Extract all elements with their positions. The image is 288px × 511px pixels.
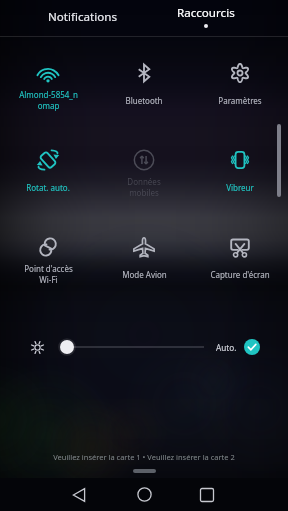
button[interactable]: Point d'accès Wi-Fi [0, 214, 96, 301]
button[interactable]: Données mobiles [96, 127, 192, 214]
staticText: Vibreur [226, 182, 254, 193]
button[interactable]: Paramètres [192, 40, 288, 127]
button[interactable]: Bluetooth [96, 40, 192, 127]
staticText: Mode Avion [122, 269, 167, 280]
button[interactable]: Almond-5854_n omap [0, 40, 96, 127]
button[interactable]: Recents [190, 478, 224, 511]
button[interactable]: Home [127, 478, 161, 511]
button[interactable]: Brightness slider [58, 336, 204, 358]
button[interactable]: Raccourcis [144, 0, 268, 37]
staticText: Données mobiles [127, 176, 161, 198]
staticText: Point d'accès Wi-Fi [24, 263, 73, 285]
staticText: Veuillez insérer la carte 1 • Veuillez i… [0, 452, 288, 462]
button[interactable]: Auto brightness [244, 339, 260, 355]
staticText: Capture d'écran [210, 269, 270, 280]
staticText: Rotat. auto. [26, 182, 70, 193]
button[interactable]: Capture d'écran [192, 214, 288, 301]
button[interactable]: Vibreur [192, 127, 288, 214]
staticText: Paramètres [218, 95, 262, 106]
staticText: Almond-5854_n omap [19, 89, 78, 111]
staticText: Raccourcis [177, 5, 235, 21]
staticText: Auto. [216, 342, 237, 353]
staticText: Notifications [48, 9, 117, 25]
button[interactable]: Rotat. auto. [0, 127, 96, 214]
button[interactable]: Mode Avion [96, 214, 192, 301]
button[interactable]: Back [62, 478, 96, 511]
staticText: Bluetooth [125, 95, 163, 106]
button[interactable]: Notifications [20, 0, 144, 37]
